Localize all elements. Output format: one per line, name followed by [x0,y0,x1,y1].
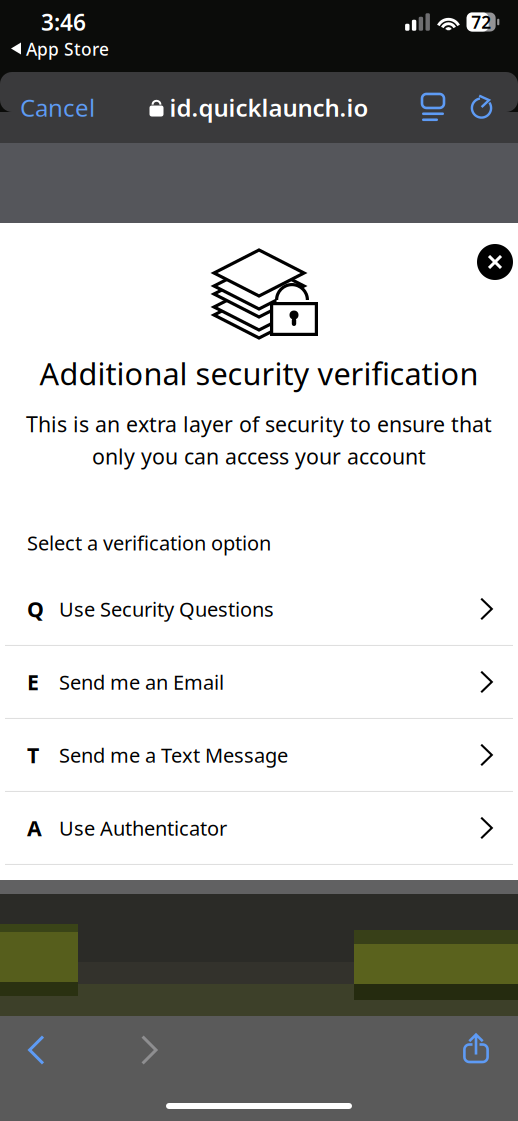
staticText: 72 [471,10,491,33]
button[interactable]: Cancel [0,72,115,143]
staticText: Send me a Text Message [59,742,288,768]
staticText: App Store [26,37,109,60]
staticText: Send me an Email [59,669,224,695]
staticText: This is an extra layer of security to en… [26,410,492,438]
staticText: Q [27,595,44,623]
button[interactable]: Reader View [408,72,458,143]
button[interactable]: Share [447,1026,505,1074]
button[interactable]: Q [0,573,518,645]
staticText: Use Security Questions [59,596,274,622]
staticText: T [27,741,39,769]
staticText: Use Authenticator [59,815,227,841]
staticText: Select a verification option [27,529,271,556]
button[interactable]: Close [468,235,518,289]
button[interactable]: A [0,792,518,864]
staticText: Cancel [20,92,95,123]
button[interactable]: Reload [458,72,505,143]
staticText: id.quicklaunch.io [169,92,368,123]
staticText: Additional security verification [39,353,478,394]
button[interactable]: Forward [124,1026,175,1074]
staticText: only you can access your account [92,442,426,470]
staticText: 3:46 [41,7,86,37]
button[interactable]: T [0,719,518,791]
button[interactable]: Back [11,1026,62,1074]
staticText: A [27,814,42,842]
staticText: E [27,668,39,696]
button[interactable]: E [0,646,518,718]
